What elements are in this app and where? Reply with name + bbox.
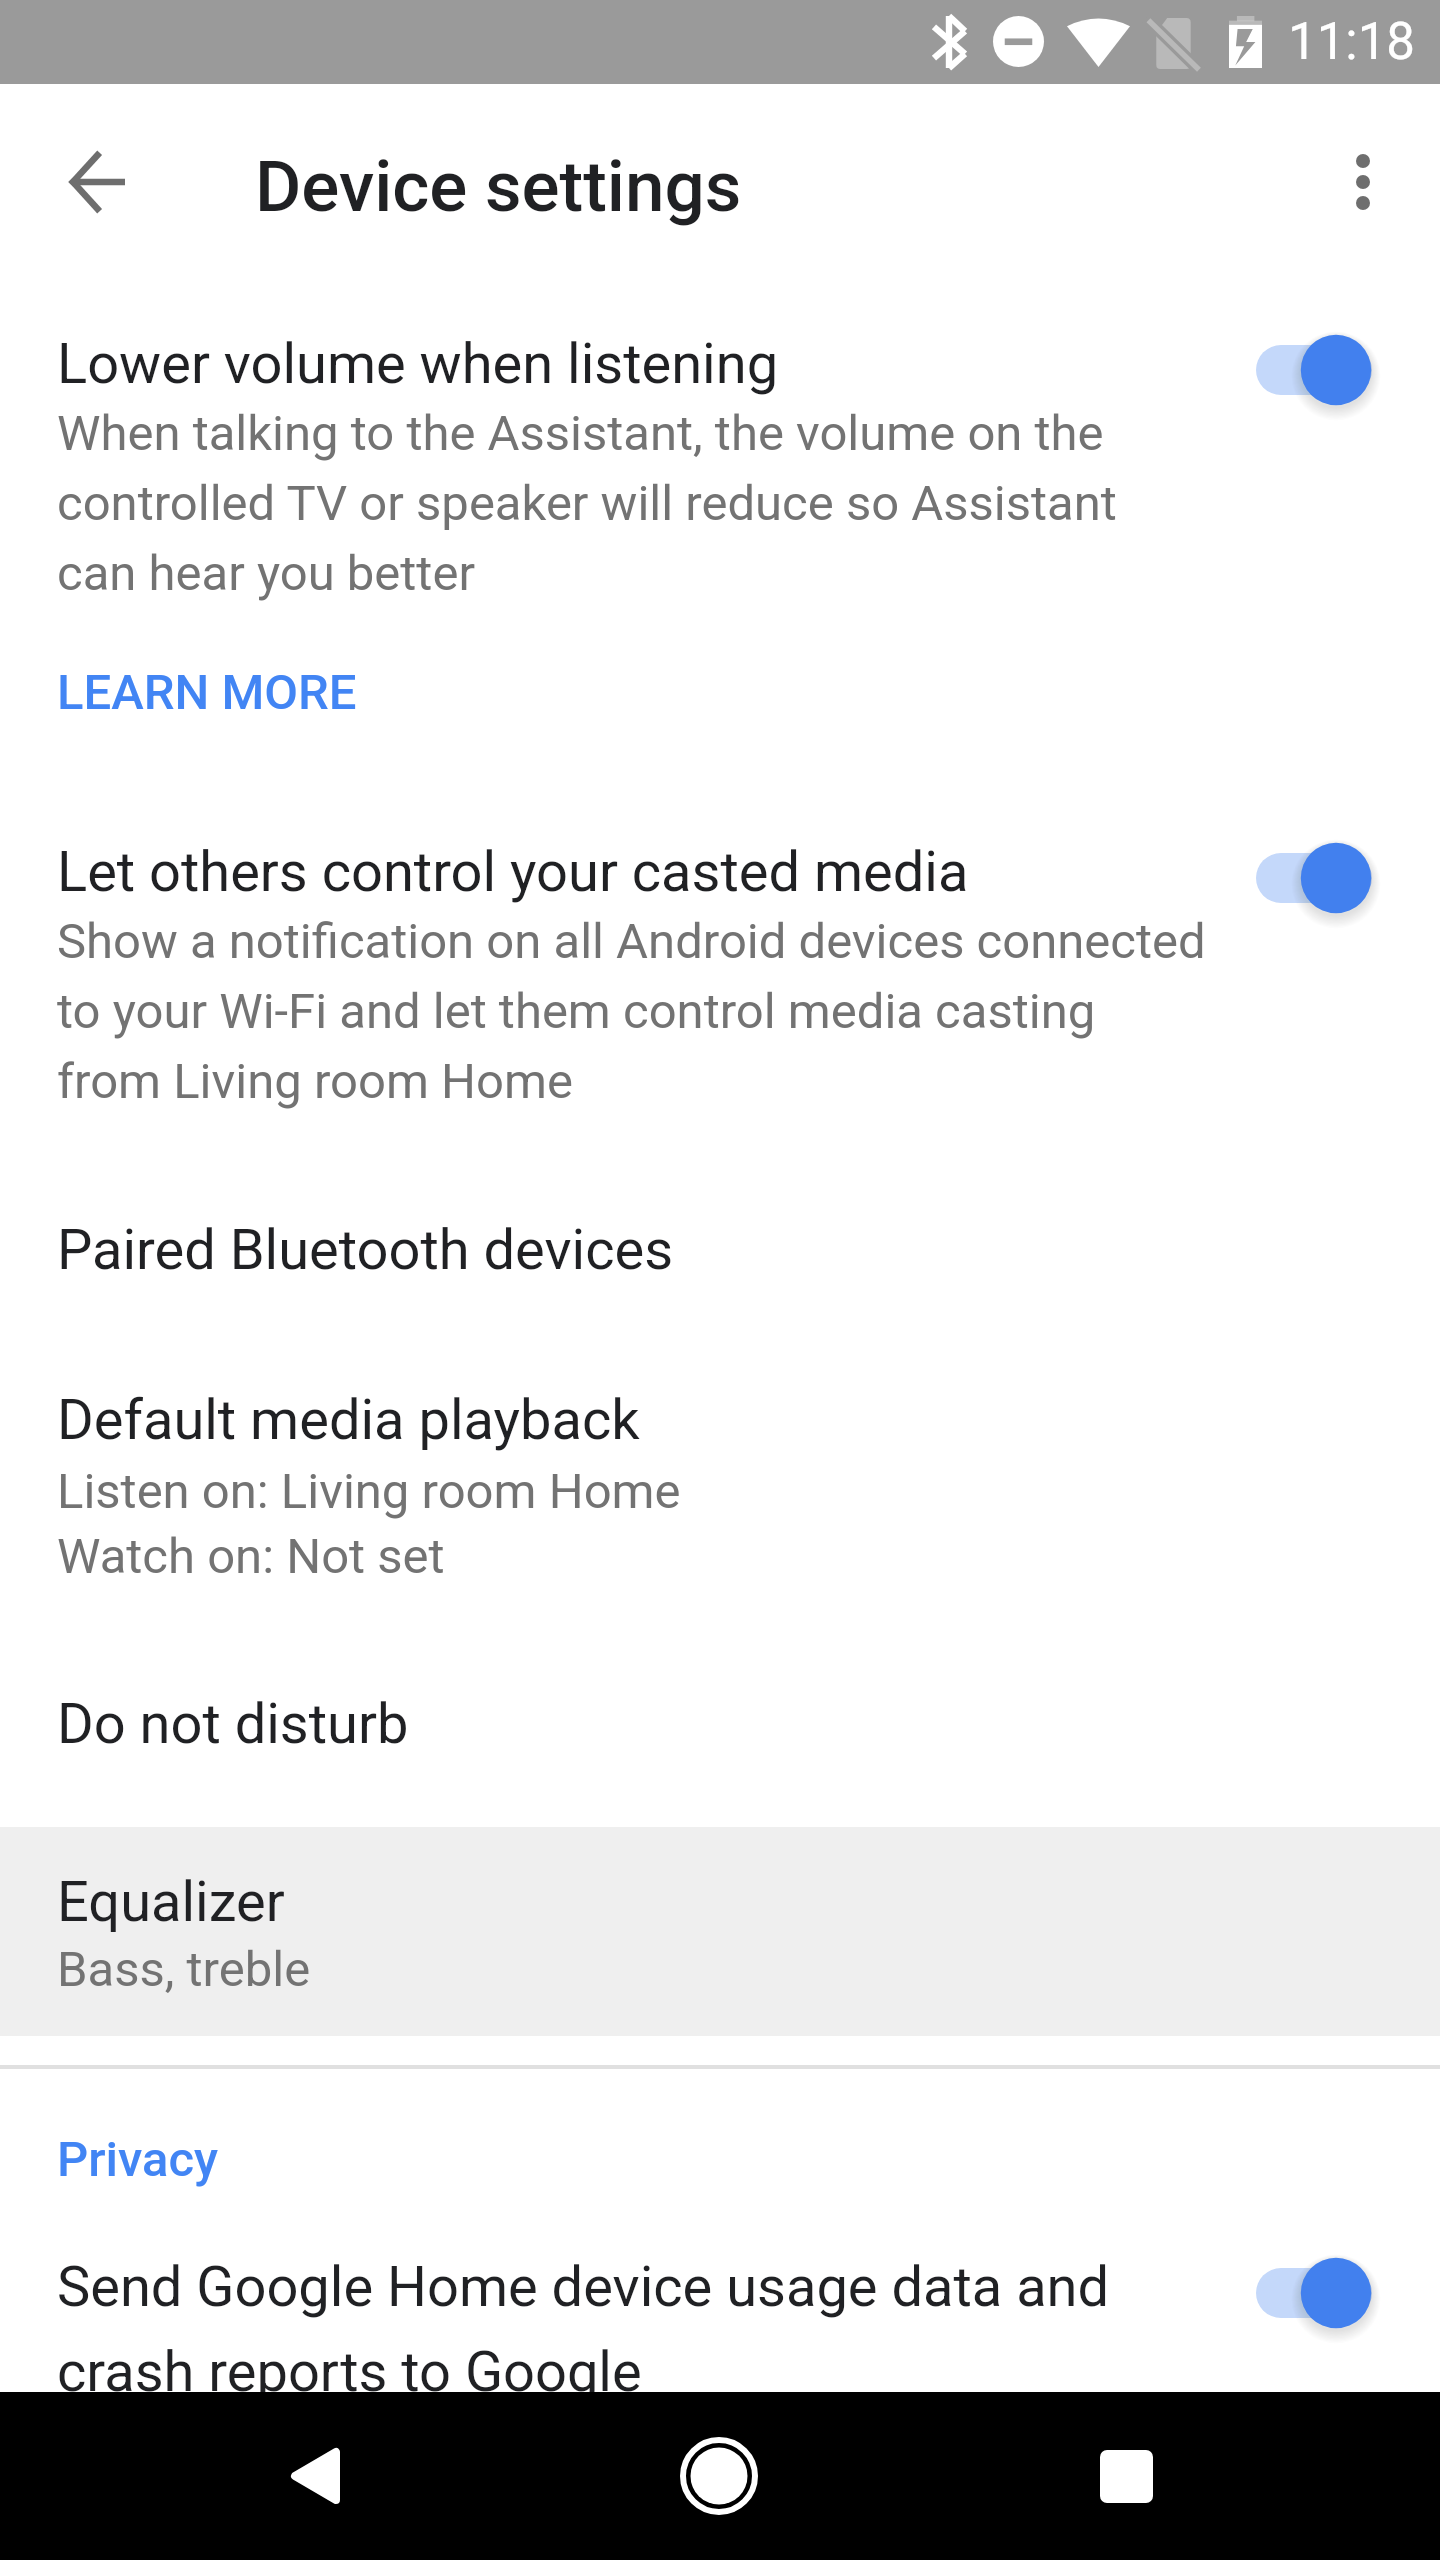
button[interactable] [0, 1190, 1440, 1320]
staticText: Watch on: Not set [57, 1528, 445, 1585]
button[interactable] [0, 1360, 1440, 1600]
button[interactable] [0, 1664, 1440, 1794]
button[interactable]: Send Google Home device usage data and c… [1236, 2233, 1392, 2353]
button[interactable]: More options [1307, 126, 1419, 238]
staticText: Lower volume when listening [57, 331, 1207, 397]
button[interactable] [0, 2225, 1440, 2392]
button[interactable]: Back [235, 2392, 395, 2560]
staticText: Send Google Home device usage data and c… [57, 2254, 1207, 2405]
staticText: Listen on: Living room Home [57, 1463, 681, 1520]
staticText: Paired Bluetooth devices [57, 1217, 1207, 1283]
staticText: Show a notification on all Android devic… [57, 913, 1207, 1110]
staticText: Device settings [255, 145, 742, 228]
button[interactable]: Home [639, 2392, 799, 2560]
staticText: Bass, treble [57, 1941, 311, 1998]
staticText: When talking to the Assistant, the volum… [57, 405, 1207, 602]
staticText: Do not disturb [57, 1691, 1207, 1757]
button[interactable] [0, 300, 1440, 730]
staticText: 11:18 [1288, 12, 1416, 72]
button[interactable]: Recent apps [1046, 2392, 1206, 2560]
button[interactable]: LEARN MORE [57, 664, 357, 721]
staticText: Equalizer [57, 1869, 1207, 1935]
button[interactable]: Navigate up [42, 126, 154, 238]
button[interactable] [0, 810, 1440, 1140]
button[interactable]: Lower volume when listening [1236, 310, 1392, 430]
button[interactable] [0, 1827, 1440, 2036]
staticText: Privacy [57, 2131, 219, 2188]
button[interactable]: Let others control your casted media [1236, 818, 1392, 938]
staticText: Default media playback [57, 1387, 1207, 1453]
staticText: Let others control your casted media [57, 839, 1207, 905]
